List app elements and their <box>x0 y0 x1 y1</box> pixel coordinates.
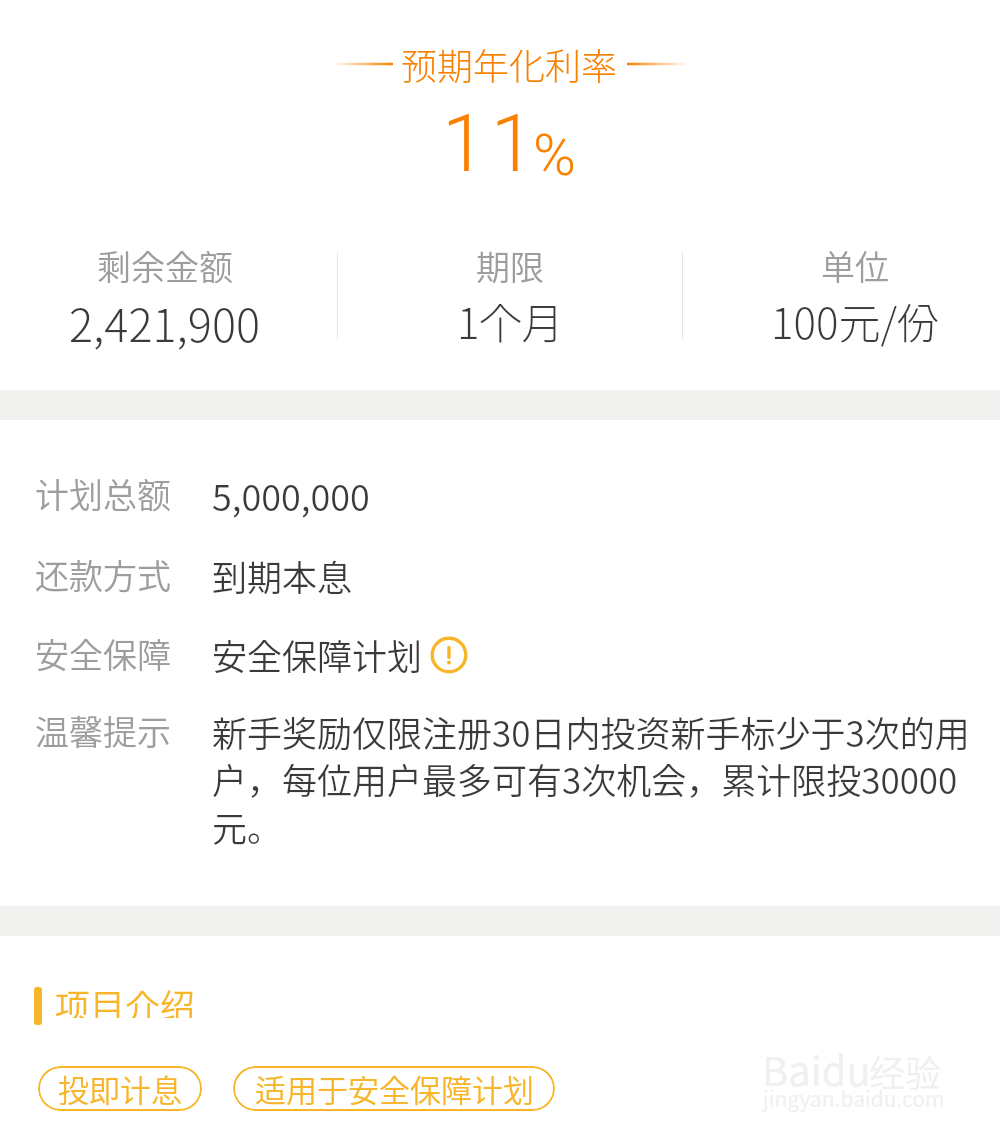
staticText: 项目介绍 <box>55 979 196 1018</box>
staticText: 适用于安全保障计划 <box>255 1066 534 1111</box>
button[interactable]: 项目介绍 <box>55 979 200 1018</box>
staticText: 5,000,000 <box>212 469 370 521</box>
staticText: 到期本息 <box>212 550 353 601</box>
staticText: 还款方式 <box>35 550 171 599</box>
staticText: 单位 <box>821 241 889 290</box>
staticText: 11 <box>442 98 540 191</box>
staticText: 预期年化利率 <box>401 38 618 90</box>
staticText: Baidu <box>762 1040 871 1098</box>
button[interactable]: 适用于安全保障计划 <box>233 1066 555 1111</box>
staticText: 投即计息 <box>58 1066 182 1111</box>
staticText: 期限 <box>476 241 544 290</box>
button[interactable]: 安全保障计划说明 <box>430 636 468 674</box>
staticText: 100元/份 <box>771 290 939 351</box>
staticText: 安全保障计划 <box>212 629 423 680</box>
staticText: 温馨提示 <box>35 706 171 755</box>
staticText: 1个月 <box>457 290 564 351</box>
button[interactable]: 投即计息 <box>38 1066 202 1111</box>
staticText: 计划总额 <box>35 469 171 518</box>
staticText: 安全保障 <box>35 629 171 678</box>
staticText: 经验 <box>869 1045 942 1097</box>
staticText: % <box>533 121 576 189</box>
staticText: 新手奖励仅限注册30日内投资新手标少于3次的用户，每位用户最多可有3次机会，累计… <box>212 706 980 853</box>
staticText: 2,421,900 <box>69 290 261 351</box>
staticText: 剩余金额 <box>97 241 233 290</box>
staticText: jingyan.baidu.com <box>763 1083 945 1113</box>
